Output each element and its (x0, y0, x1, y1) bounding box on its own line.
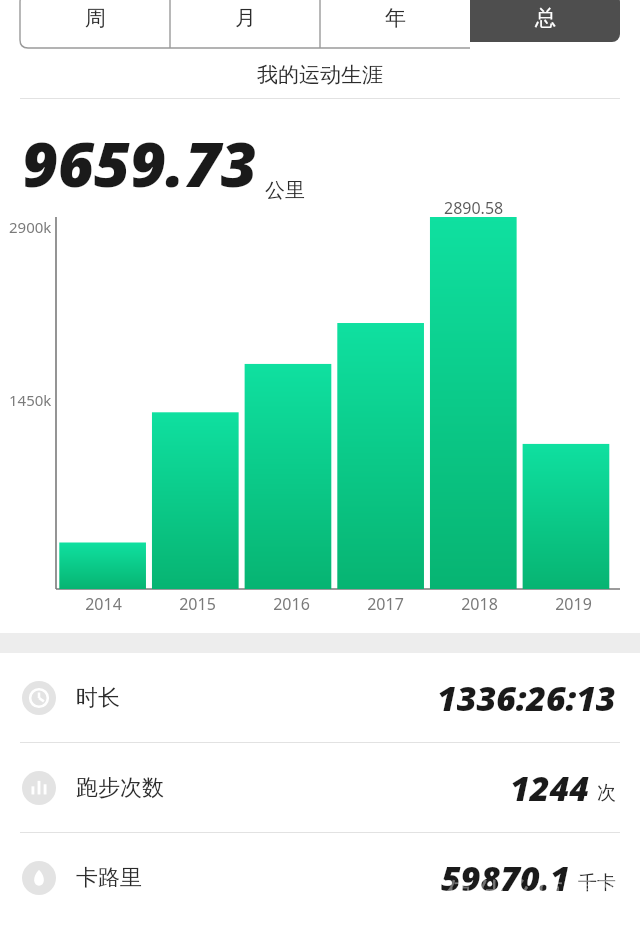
staticText: 1244 (510, 765, 589, 811)
button[interactable]: 跑步次数 (0, 743, 640, 832)
staticText: 卡路里 (76, 864, 142, 892)
button[interactable]: 时长 (0, 653, 640, 742)
staticText: 2890.58 (444, 197, 504, 219)
other: 时长 (22, 681, 56, 715)
staticText: 1336:26:13 (437, 675, 616, 721)
staticText: 千卡 (578, 871, 616, 895)
staticText: 总 (535, 5, 556, 31)
staticText: 我的运动生涯 (257, 62, 383, 88)
staticText: 2014 (85, 593, 122, 615)
staticText: 2900k (9, 217, 52, 237)
staticText: 值 (446, 875, 474, 910)
staticText: 9659.73 (22, 121, 257, 205)
staticText: 什 (476, 875, 504, 910)
staticText: 2018 (461, 593, 498, 615)
staticText: 2017 (367, 593, 404, 615)
button[interactable]: 周 (20, 0, 170, 42)
staticText: 跑步次数 (76, 774, 164, 802)
staticText: 2015 (179, 593, 216, 615)
staticText: 买 (596, 875, 624, 910)
staticText: 年 (385, 5, 406, 31)
button[interactable]: 年 (320, 0, 470, 42)
staticText: 59870.1 (441, 855, 570, 901)
staticText: 月 (235, 5, 256, 31)
staticText: 得 (566, 875, 594, 910)
button[interactable]: 卡路里 (0, 833, 640, 922)
staticText: 2019 (555, 593, 592, 615)
staticText: 公里 (265, 178, 305, 203)
staticText: 周 (85, 5, 106, 31)
button[interactable]: 月 (170, 0, 320, 42)
staticText: 值 (536, 875, 564, 910)
button[interactable]: 总 (470, 0, 620, 42)
staticText: 次 (597, 781, 616, 805)
staticText: 1450k (9, 390, 52, 410)
staticText: 2016 (273, 593, 310, 615)
staticText: 么 (506, 875, 534, 910)
other: 卡路里 (22, 861, 56, 895)
staticText: 时长 (76, 684, 120, 712)
other: 跑步次数 (22, 771, 56, 805)
